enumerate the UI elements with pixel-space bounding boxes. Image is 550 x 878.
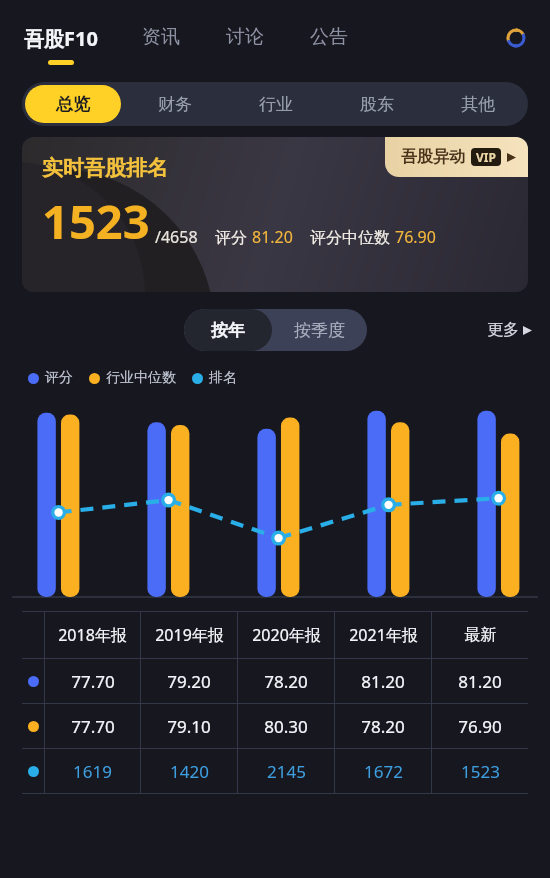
staticText: 78.20 xyxy=(361,715,405,738)
button[interactable]: 按年 xyxy=(184,309,272,351)
staticText: 评分 xyxy=(215,226,252,248)
staticText: 最新 xyxy=(464,625,496,645)
staticText: 79.10 xyxy=(167,715,211,738)
staticText: 实时吾股排名 xyxy=(42,155,168,181)
button[interactable]: 更多 xyxy=(487,320,532,340)
staticText: 76.90 xyxy=(458,715,502,738)
staticText: 更多 xyxy=(487,320,519,340)
button[interactable]: 行业 xyxy=(228,85,323,123)
staticText: 其他 xyxy=(461,94,495,115)
staticText: 按年 xyxy=(211,320,245,341)
staticText: 公告 xyxy=(310,25,348,49)
staticText: 79.20 xyxy=(167,670,211,693)
staticText: 1619 xyxy=(73,760,112,783)
staticText: 1672 xyxy=(364,760,403,783)
button[interactable]: 资讯 xyxy=(138,0,184,49)
staticText: 行业 xyxy=(259,94,293,115)
staticText: 77.70 xyxy=(71,670,115,693)
staticText: 76.90 xyxy=(395,226,436,248)
button[interactable]: 公告 xyxy=(306,0,352,49)
button[interactable]: 刷新 xyxy=(498,20,534,56)
staticText: 81.20 xyxy=(458,670,502,693)
staticText: 资讯 xyxy=(142,25,180,49)
staticText: 财务 xyxy=(158,94,192,115)
button[interactable]: 讨论 xyxy=(222,0,268,49)
staticText: 评分中位数 xyxy=(310,226,395,248)
staticText: 81.20 xyxy=(361,670,405,693)
button[interactable]: 其他 xyxy=(430,85,525,123)
staticText: 行业中位数 xyxy=(106,369,176,387)
staticText: 按季度 xyxy=(294,320,345,341)
staticText: 81.20 xyxy=(252,226,293,248)
staticText: 77.70 xyxy=(71,715,115,738)
staticText: 讨论 xyxy=(226,25,264,49)
staticText: 吾股异动 xyxy=(401,147,465,167)
button[interactable]: 总览 xyxy=(25,85,121,123)
staticText: 排名 xyxy=(209,369,237,387)
staticText: VIP xyxy=(476,149,496,165)
staticText: 评分 xyxy=(45,369,73,387)
button[interactable]: 股东 xyxy=(329,85,424,123)
staticText: 总览 xyxy=(56,94,90,115)
button[interactable]: 吾股F10 xyxy=(24,0,98,65)
staticText: 吾股F10 xyxy=(24,25,98,52)
staticText: 股东 xyxy=(360,94,394,115)
staticText: 1523 xyxy=(461,760,500,783)
staticText: /4658 xyxy=(155,226,198,248)
button[interactable]: 吾股异动 xyxy=(385,137,528,177)
staticText: 78.20 xyxy=(264,670,308,693)
staticText: 2020年报 xyxy=(252,624,321,646)
staticText: 2018年报 xyxy=(58,624,127,646)
staticText: 2019年报 xyxy=(155,624,224,646)
staticText: 2145 xyxy=(267,760,306,783)
staticText: 2021年报 xyxy=(349,624,418,646)
button[interactable]: 财务 xyxy=(127,85,222,123)
staticText: 1420 xyxy=(170,760,209,783)
button[interactable]: 按季度 xyxy=(272,309,367,351)
staticText: 1523 xyxy=(42,189,150,253)
staticText: 80.30 xyxy=(264,715,308,738)
